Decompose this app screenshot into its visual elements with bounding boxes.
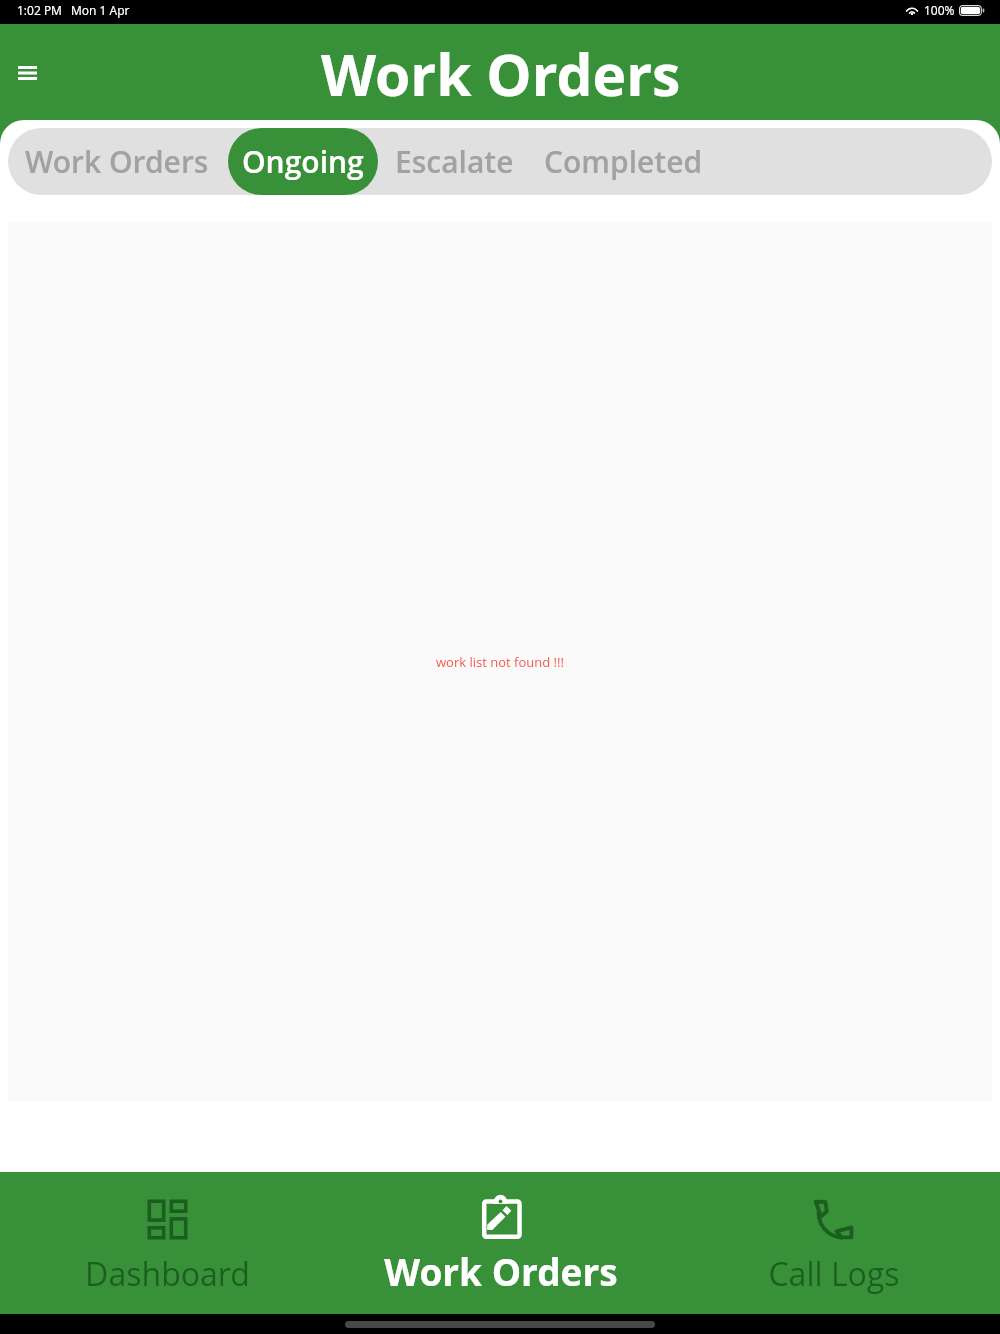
- button[interactable]: Open navigation menu: [5, 50, 50, 95]
- staticText: Escalate: [395, 141, 514, 182]
- staticText: Work Orders: [321, 35, 681, 113]
- staticText: Mon 1 Apr: [71, 2, 130, 18]
- staticText: Dashboard: [85, 1252, 250, 1296]
- staticText: Completed: [544, 141, 703, 182]
- button[interactable]: Work Orders: [8, 128, 219, 195]
- button[interactable]: Escalate: [378, 128, 532, 195]
- staticText: Work Orders: [384, 1246, 618, 1296]
- staticText: work list not found !!!: [436, 653, 564, 671]
- button[interactable]: Ongoing: [228, 128, 378, 195]
- button[interactable]: Completed: [532, 128, 720, 195]
- staticText: Call Logs: [768, 1252, 900, 1296]
- staticText: 100%: [924, 2, 955, 18]
- staticText: Work Orders: [25, 141, 209, 182]
- staticText: 1:02 PM: [17, 2, 62, 18]
- button[interactable]: Dashboard: [0, 1172, 334, 1314]
- button[interactable]: Call Logs: [667, 1172, 1000, 1314]
- staticText: Ongoing: [242, 141, 364, 182]
- button[interactable]: Work Orders: [334, 1172, 667, 1314]
